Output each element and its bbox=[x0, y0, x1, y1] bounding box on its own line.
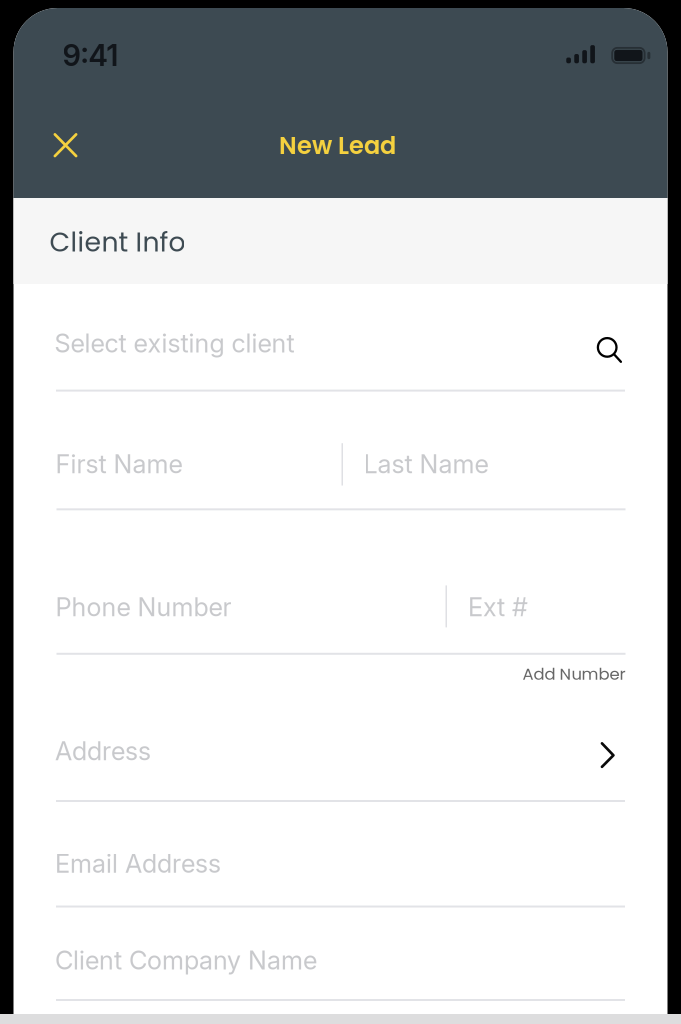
staticText: Last Name bbox=[363, 449, 488, 479]
staticText: Client Info bbox=[49, 223, 185, 261]
staticText: Add Number bbox=[522, 663, 625, 686]
button[interactable]: Close bbox=[43, 123, 87, 167]
staticText: Ext # bbox=[468, 592, 528, 622]
button[interactable]: Select existing client bbox=[55, 325, 625, 393]
staticText: Address bbox=[55, 736, 151, 766]
button[interactable]: Address bbox=[55, 734, 625, 803]
button[interactable]: Add Number bbox=[522, 663, 625, 686]
staticText: New Lead bbox=[279, 129, 396, 162]
button[interactable]: Client Company Name bbox=[55, 944, 625, 1002]
button[interactable]: Phone Number bbox=[56, 577, 466, 656]
button[interactable]: Last Name bbox=[363, 437, 627, 511]
button[interactable]: First Name bbox=[56, 437, 339, 511]
staticText: Client Company Name bbox=[55, 945, 317, 976]
button[interactable]: Extension number bbox=[468, 577, 600, 656]
staticText: Email Address bbox=[55, 848, 221, 879]
staticText: Select existing client bbox=[54, 328, 294, 359]
staticText: First Name bbox=[55, 449, 182, 479]
staticText: 9:41 bbox=[63, 37, 119, 73]
staticText: Phone Number bbox=[55, 592, 231, 622]
button[interactable]: Email Address bbox=[55, 848, 625, 908]
